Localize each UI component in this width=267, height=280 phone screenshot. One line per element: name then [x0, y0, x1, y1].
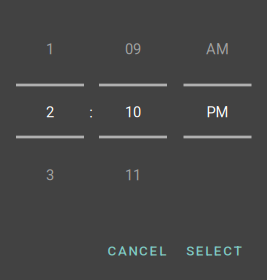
staticText: 3 [46, 167, 54, 184]
staticText: SELECT [186, 243, 242, 259]
staticText: 09 [125, 41, 141, 58]
button[interactable]: SELECT [177, 236, 251, 266]
button[interactable]: 09 [99, 18, 167, 81]
staticText: 1 [46, 41, 54, 58]
button[interactable]: PM [183, 81, 251, 144]
staticText: 11 [125, 167, 141, 184]
button[interactable]: 11 [99, 144, 167, 207]
staticText: PM [206, 104, 228, 121]
staticText: 2 [46, 104, 54, 121]
button[interactable]: AM [183, 18, 251, 81]
staticText: : [89, 104, 93, 121]
button[interactable]: CANCEL [99, 236, 175, 266]
staticText: 10 [125, 104, 141, 121]
staticText: AM [206, 41, 229, 58]
button[interactable]: 1 [16, 18, 84, 81]
button[interactable]: 10 [99, 81, 167, 144]
button[interactable]: 3 [16, 144, 84, 207]
button[interactable]: 2 [16, 81, 84, 144]
staticText: CANCEL [107, 243, 166, 259]
